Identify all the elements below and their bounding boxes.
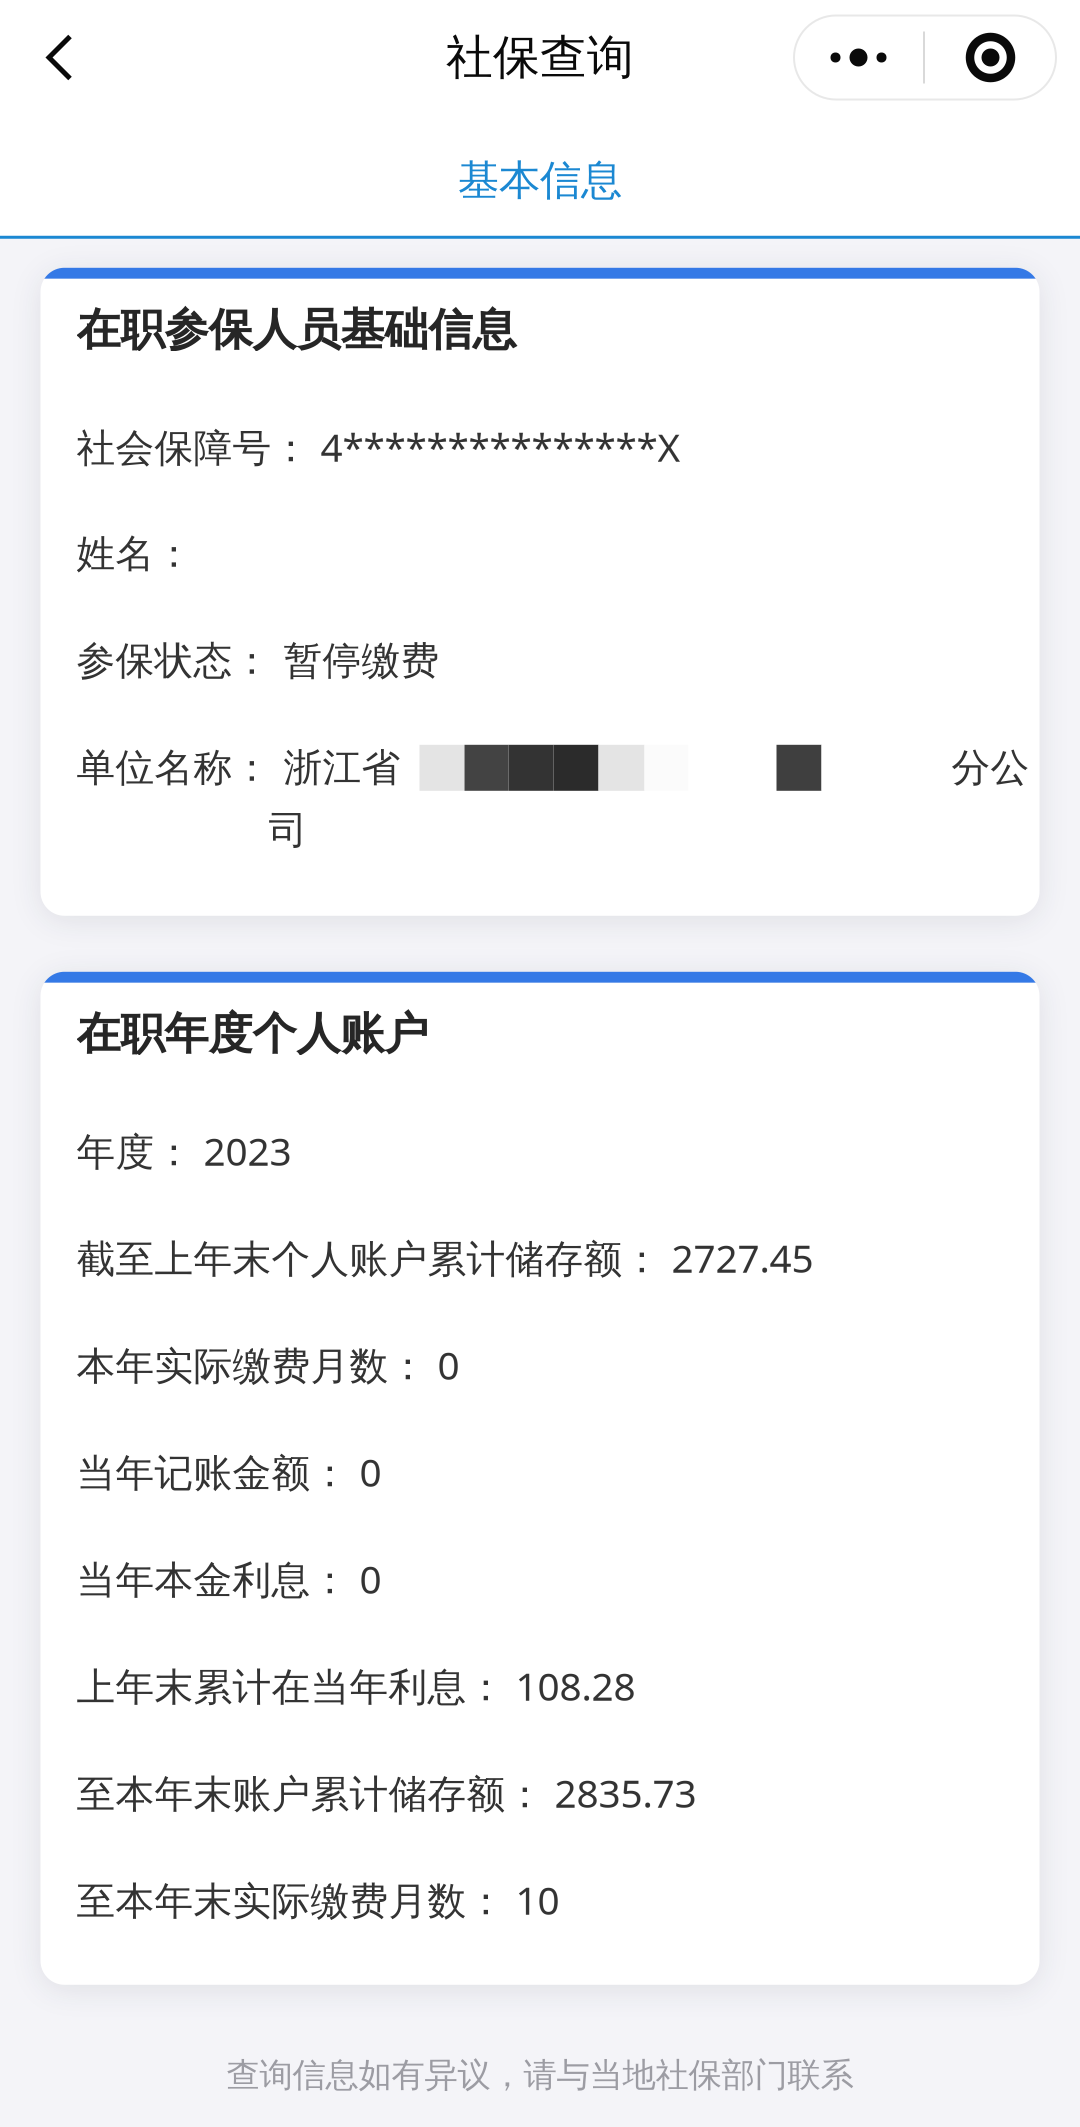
staticText: 至本年末实际缴费月数： 10 [76, 1874, 559, 1925]
staticText: 本年实际缴费月数： 0 [76, 1339, 459, 1390]
staticText: 在职参保人员基础信息 [76, 303, 516, 357]
staticText: 单位名称： 浙江省 [76, 744, 400, 791]
staticText: 分公 [951, 744, 1029, 791]
staticText: 在职年度个人账户 [76, 1007, 428, 1061]
staticText: 截至上年末个人账户累计储存额： 2727.45 [76, 1232, 813, 1283]
button[interactable]: Back [0, 0, 92, 115]
button[interactable]: 基本信息 [0, 115, 1080, 236]
button[interactable]: More options [794, 0, 1056, 115]
staticText: 社会保障号： 4***************X [76, 421, 680, 472]
staticText: 司 [268, 806, 307, 854]
staticText: 年度： 2023 [76, 1125, 291, 1176]
staticText: 至本年末账户累计储存额： 2835.73 [76, 1767, 696, 1818]
staticText: 参保状态： 暂停缴费 [76, 637, 439, 684]
staticText: 基本信息 [458, 155, 622, 206]
staticText: 查询信息如有异议，请与当地社保部门联系 [226, 2055, 853, 2096]
staticText: 社保查询 [446, 29, 634, 86]
staticText: 上年末累计在当年利息： 108.28 [76, 1660, 635, 1711]
staticText: 当年本金利息： 0 [76, 1553, 381, 1604]
staticText: 当年记账金额： 0 [76, 1446, 381, 1497]
staticText: 姓名： [76, 530, 193, 577]
